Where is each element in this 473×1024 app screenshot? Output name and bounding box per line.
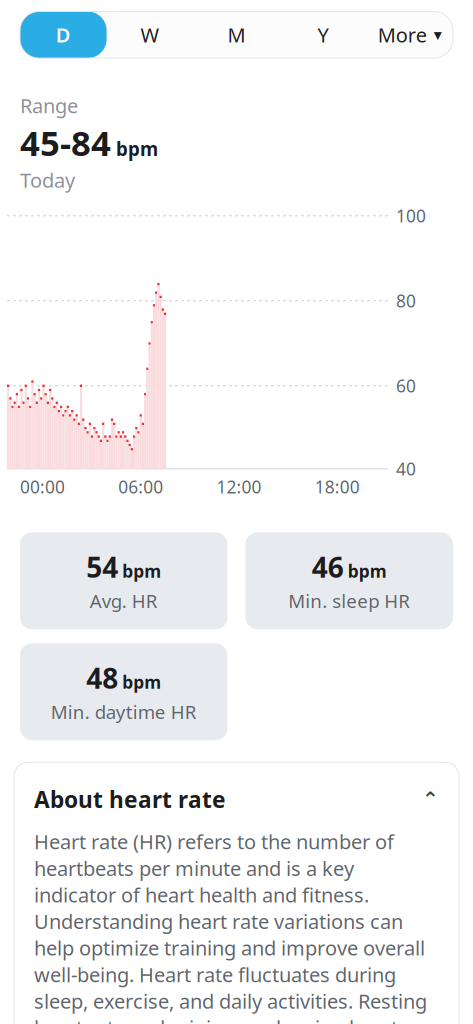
staticText: 60 xyxy=(396,374,416,397)
staticText: Range xyxy=(20,92,78,119)
staticText: D xyxy=(56,21,71,48)
staticText: 00:00 xyxy=(20,475,65,498)
staticText: Min. sleep HR xyxy=(288,588,410,613)
staticText: Y xyxy=(318,21,329,48)
button[interactable]: D xyxy=(20,11,107,58)
staticText: More xyxy=(378,21,427,48)
staticText: Avg. HR xyxy=(90,588,158,613)
staticText: 46 xyxy=(312,548,344,585)
staticText: 48 xyxy=(86,659,118,696)
button[interactable]: W xyxy=(107,11,193,58)
staticText: M xyxy=(227,21,245,48)
staticText: 12:00 xyxy=(216,475,261,498)
staticText: Today xyxy=(20,167,75,193)
staticText: About heart rate xyxy=(34,784,226,814)
staticText: ⌃ xyxy=(422,788,439,811)
button[interactable]: 48 xyxy=(20,643,227,740)
staticText: 100 xyxy=(396,204,426,227)
button[interactable]: M xyxy=(193,11,280,58)
button[interactable]: Y xyxy=(280,11,366,58)
staticText: ▾ xyxy=(434,26,442,44)
staticText: bpm xyxy=(348,559,387,582)
staticText: bpm xyxy=(122,670,161,693)
staticText: 18:00 xyxy=(315,475,360,498)
button[interactable]: 54 xyxy=(20,532,227,629)
button[interactable]: More xyxy=(366,11,453,58)
staticText: bpm xyxy=(116,136,158,161)
staticText: 45-84 xyxy=(20,120,111,166)
button[interactable]: 46 xyxy=(245,532,453,629)
staticText: Min. daytime HR xyxy=(51,699,197,724)
staticText: Heart rate (HR) refers to the number of … xyxy=(34,828,427,1024)
staticText: 54 xyxy=(86,548,118,585)
staticText: 40 xyxy=(396,457,416,480)
button[interactable]: About heart rate xyxy=(14,762,459,828)
staticText: 80 xyxy=(396,289,416,312)
staticText: W xyxy=(140,21,159,48)
staticText: 06:00 xyxy=(118,475,163,498)
staticText: bpm xyxy=(122,559,161,582)
